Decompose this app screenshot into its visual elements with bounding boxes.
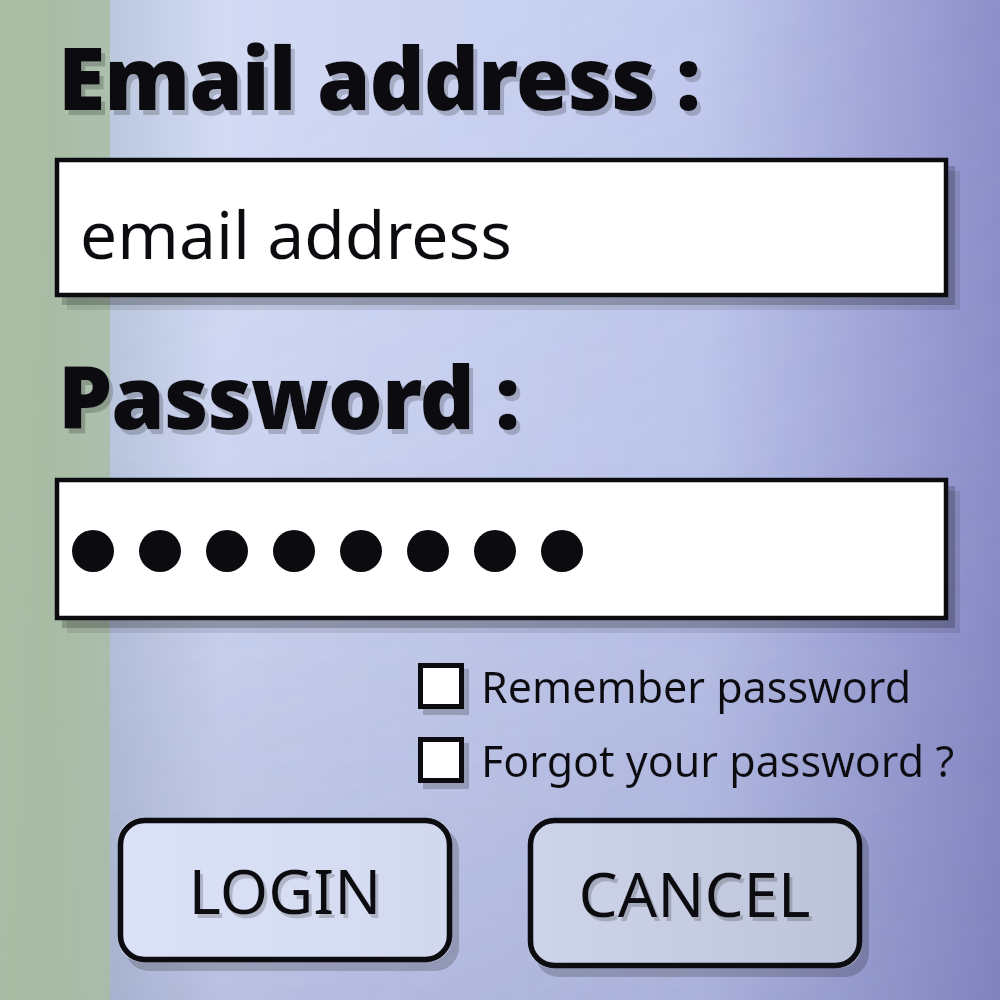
button[interactable]: Remember password checkbox (418, 655, 878, 717)
button[interactable]: Password input field (55, 478, 948, 620)
button[interactable]: Forgot your password checkbox (418, 729, 918, 791)
button[interactable]: Login (118, 818, 452, 962)
button[interactable]: Email address input field (55, 158, 948, 297)
button[interactable]: Cancel (528, 818, 862, 968)
